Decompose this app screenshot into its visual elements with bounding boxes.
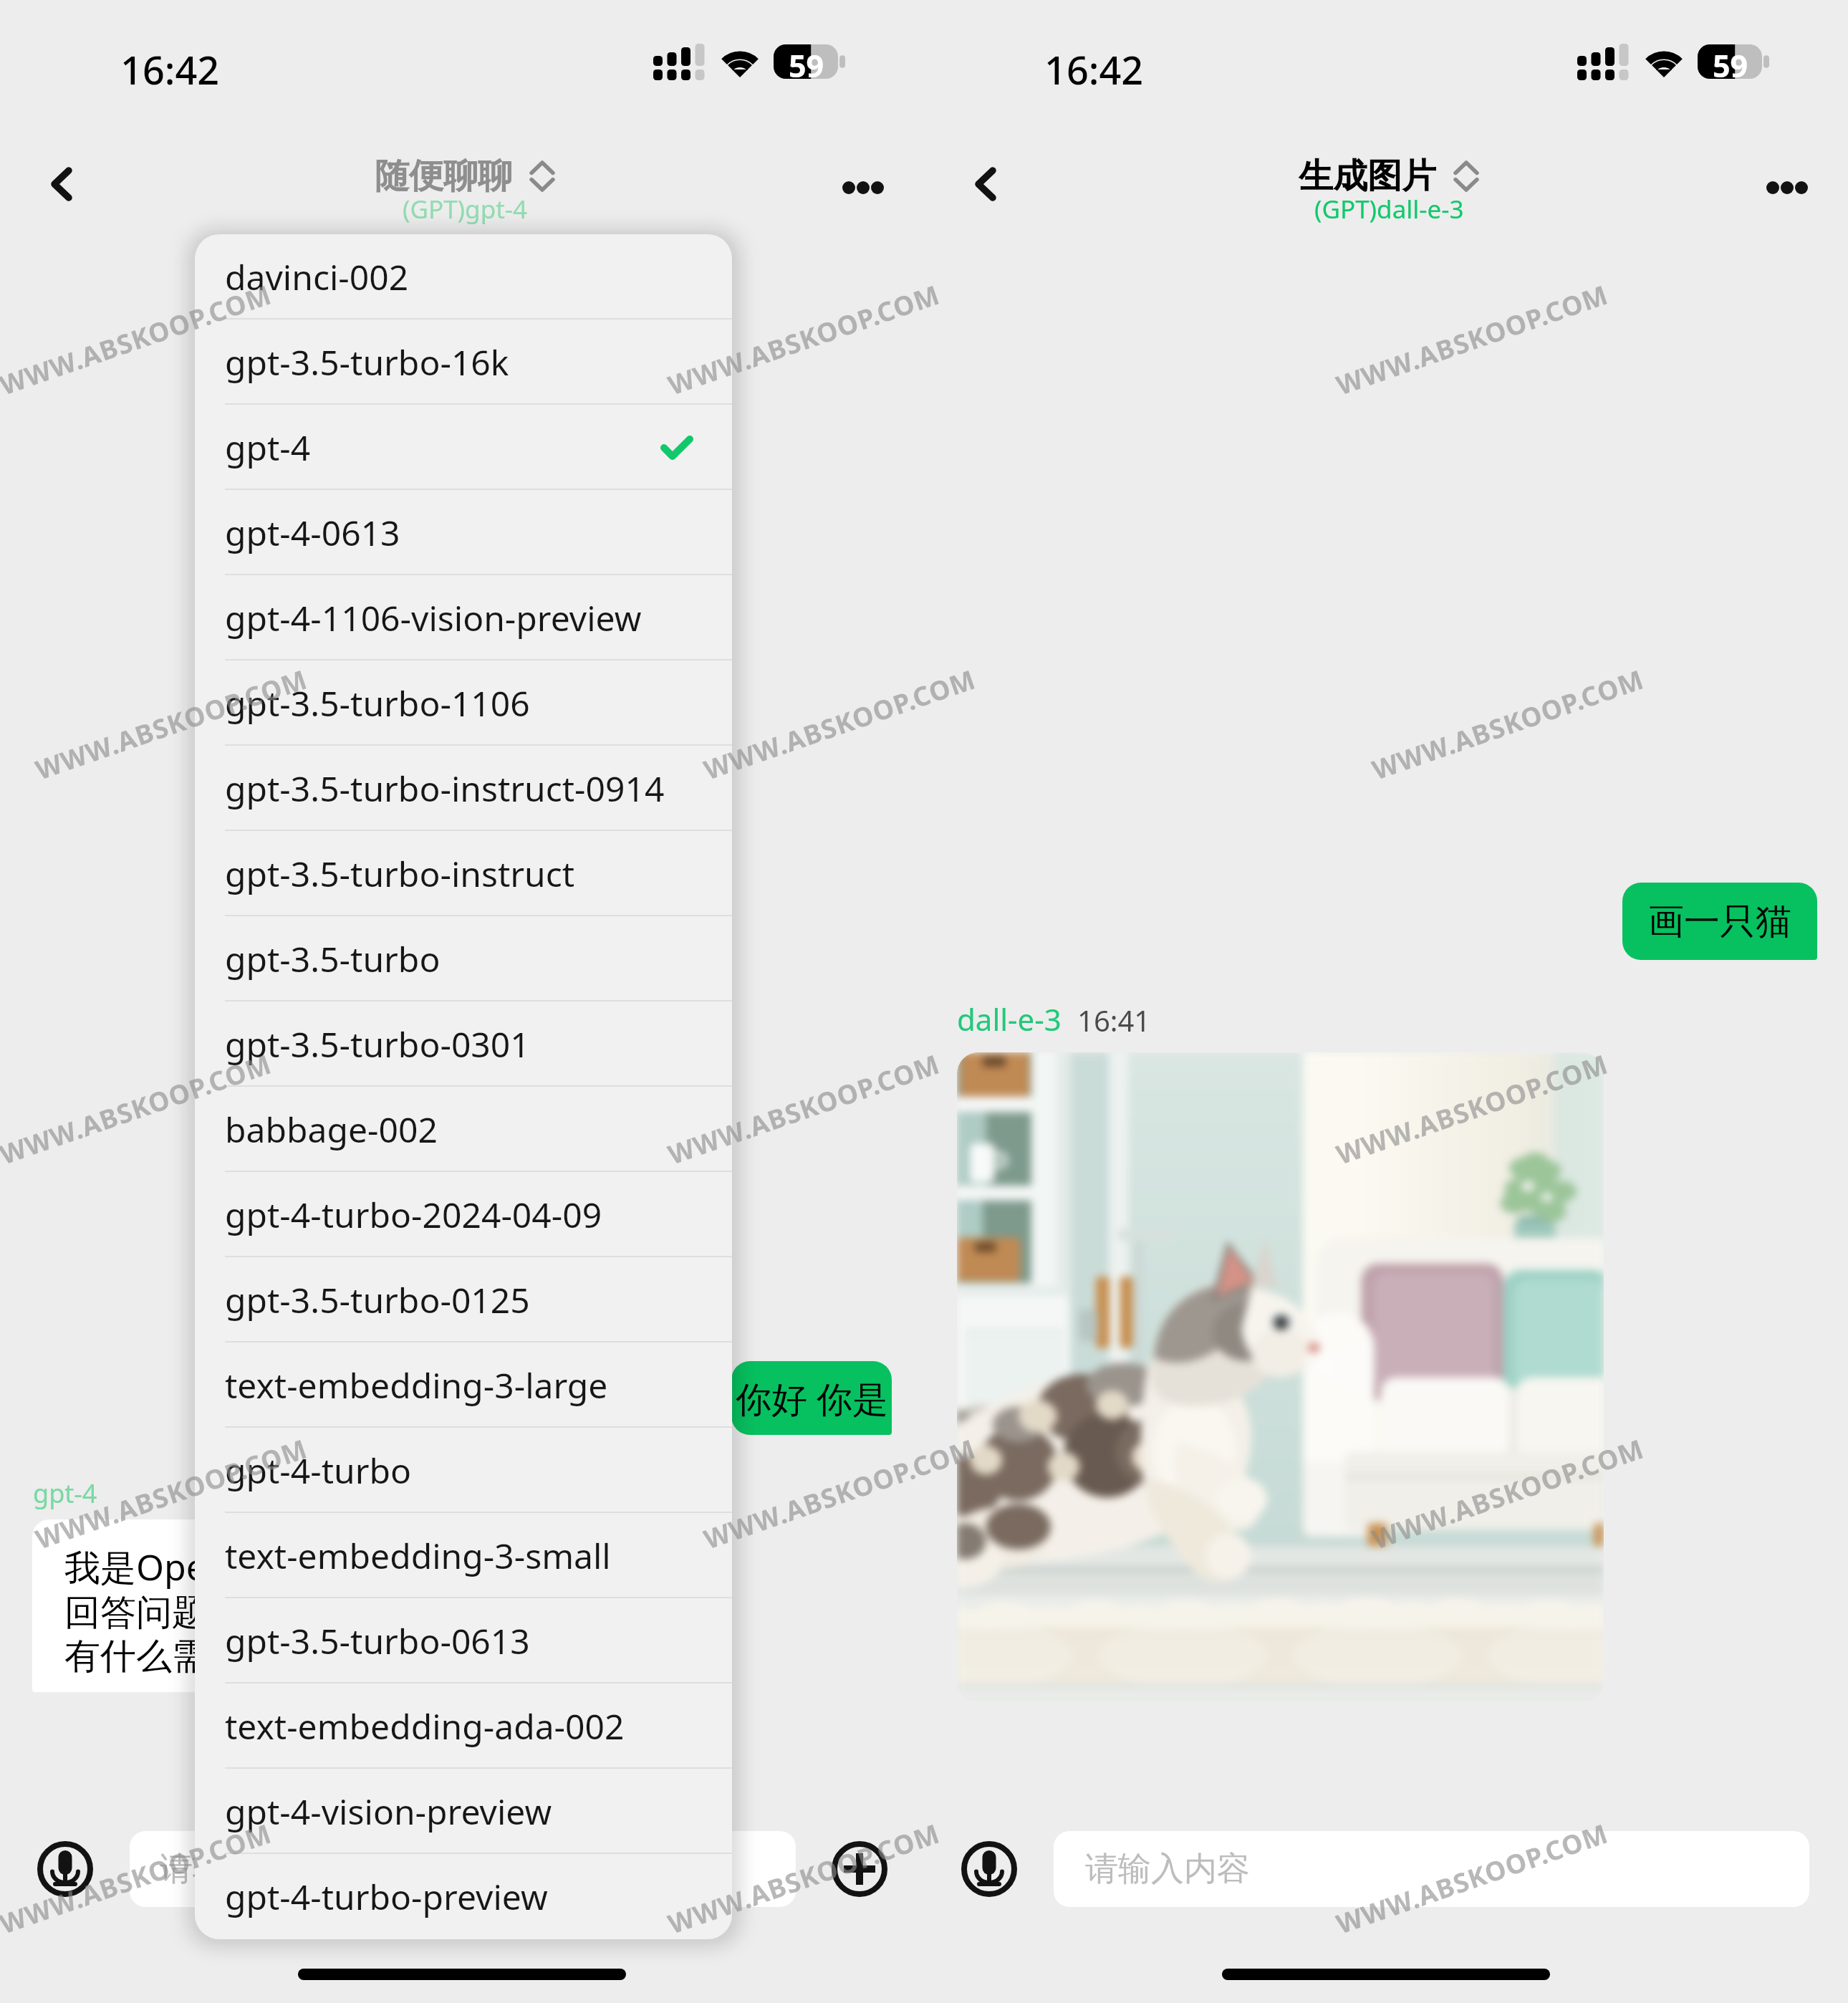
staticText: gpt-3.5-turbo-instruct-0914 — [225, 765, 665, 812]
staticText: WWW.ABSKOOP.COM — [663, 1045, 944, 1172]
button[interactable]: Voice input — [953, 1833, 1025, 1905]
staticText: 16:42 — [1044, 43, 1144, 96]
staticText: gpt-4 — [225, 424, 311, 471]
button[interactable]: gpt-4-1106-vision-preview — [195, 575, 732, 661]
staticText: WWW.ABSKOOP.COM — [31, 660, 312, 787]
staticText: gpt-3.5-turbo-16k — [225, 339, 509, 385]
button[interactable]: gpt-3.5-turbo — [195, 916, 732, 1001]
staticText: 59 — [1713, 44, 1748, 87]
staticText: gpt-3.5-turbo — [225, 936, 441, 982]
button[interactable]: gpt-3.5-turbo-0301 — [195, 1001, 732, 1087]
staticText: 你好 你是 — [736, 1374, 888, 1423]
button[interactable]: Voice input — [29, 1833, 101, 1905]
button[interactable]: 请输入内容 — [130, 1831, 796, 1907]
staticText: WWW.ABSKOOP.COM — [0, 1814, 276, 1941]
staticText: gpt-4-turbo — [225, 1447, 412, 1494]
button[interactable]: gpt-3.5-turbo-0125 — [195, 1257, 732, 1342]
staticText: WWW.ABSKOOP.COM — [663, 276, 944, 402]
button[interactable]: gpt-3.5-turbo-16k — [195, 320, 732, 405]
staticText: gpt-4-turbo-2024-04-09 — [225, 1191, 602, 1238]
staticText: WWW.ABSKOOP.COM — [1367, 660, 1648, 787]
staticText: gpt-3.5-turbo-instruct — [225, 850, 575, 897]
button[interactable]: gpt-4-turbo-preview — [195, 1854, 732, 1939]
button[interactable]: text-embedding-3-large — [195, 1342, 732, 1428]
button[interactable]: davinci-002 — [195, 234, 732, 320]
staticText: 请输入内容 — [1085, 1848, 1250, 1890]
staticText: 16:42 — [120, 43, 220, 96]
button[interactable]: gpt-4-vision-preview — [195, 1769, 732, 1854]
button[interactable]: 我是OpenAI开 回答问题，提 有什么需要 — [32, 1519, 398, 1692]
staticText: WWW.ABSKOOP.COM — [699, 1430, 980, 1556]
staticText: text-embedding-ada-002 — [225, 1703, 625, 1749]
button[interactable]: Back — [24, 147, 99, 221]
staticText: 我是OpenAI开 回答问题，提 有什么需要 — [64, 1542, 299, 1678]
button[interactable]: gpt-4-turbo — [195, 1428, 732, 1513]
staticText: WWW.ABSKOOP.COM — [699, 660, 980, 787]
staticText: WWW.ABSKOOP.COM — [0, 276, 276, 402]
staticText: WWW.ABSKOOP.COM — [663, 1814, 944, 1941]
staticText: gpt-4 — [33, 1476, 97, 1511]
staticText: dall-e-3 — [957, 999, 1062, 1039]
button[interactable]: gpt-4-turbo-2024-04-09 — [195, 1172, 732, 1257]
staticText: WWW.ABSKOOP.COM — [1331, 1045, 1613, 1172]
button[interactable]: gpt-3.5-turbo-0613 — [195, 1598, 732, 1683]
staticText: 画一只猫 — [1648, 899, 1791, 944]
button[interactable]: Add — [824, 1833, 895, 1905]
button[interactable]: gpt-4-0613 — [195, 490, 732, 575]
staticText: WWW.ABSKOOP.COM — [0, 1045, 276, 1172]
staticText: 生成图片 — [1299, 155, 1436, 198]
staticText: text-embedding-3-small — [225, 1532, 611, 1579]
button[interactable]: 你好 你是 — [731, 1361, 892, 1435]
staticText: (GPT)gpt-4 — [403, 192, 528, 226]
button[interactable]: Back — [948, 147, 1023, 221]
staticText: WWW.ABSKOOP.COM — [31, 1430, 312, 1556]
staticText: gpt-4-vision-preview — [225, 1788, 552, 1835]
button[interactable]: gpt-3.5-turbo-instruct-0914 — [195, 746, 732, 831]
button[interactable]: gpt-4 — [195, 405, 732, 490]
staticText: 59 — [789, 44, 824, 87]
staticText: 随便聊聊 — [375, 155, 512, 198]
staticText: davinci-002 — [225, 254, 409, 300]
staticText: gpt-3.5-turbo-0613 — [225, 1618, 530, 1664]
staticText: gpt-3.5-turbo-1106 — [225, 680, 530, 726]
button[interactable]: More options — [1744, 145, 1830, 231]
button[interactable]: 画一只猫 — [1622, 883, 1817, 960]
staticText: gpt-3.5-turbo-0301 — [225, 1021, 530, 1067]
staticText: 请输入内容 — [160, 1848, 324, 1890]
staticText: gpt-3.5-turbo-0125 — [225, 1277, 530, 1323]
staticText: (GPT)dall-e-3 — [1314, 192, 1464, 226]
staticText: gpt-4-1106-vision-preview — [225, 595, 642, 641]
staticText: text-embedding-3-large — [225, 1362, 608, 1408]
staticText: 16:41 — [1077, 1001, 1151, 1039]
staticText: gpt-4-turbo-preview — [225, 1873, 548, 1920]
button[interactable]: text-embedding-3-small — [195, 1513, 732, 1598]
staticText: gpt-4-0613 — [225, 509, 400, 556]
staticText: WWW.ABSKOOP.COM — [1367, 1430, 1648, 1556]
button[interactable]: gpt-3.5-turbo-instruct — [195, 831, 732, 916]
button[interactable]: 请输入内容 — [1054, 1831, 1809, 1907]
button[interactable]: text-embedding-ada-002 — [195, 1683, 732, 1769]
button[interactable]: babbage-002 — [195, 1087, 732, 1172]
staticText: babbage-002 — [225, 1106, 438, 1153]
button[interactable]: More options — [820, 145, 906, 231]
button[interactable]: gpt-3.5-turbo-1106 — [195, 661, 732, 746]
staticText: WWW.ABSKOOP.COM — [1331, 276, 1613, 402]
staticText: WWW.ABSKOOP.COM — [1331, 1814, 1613, 1941]
